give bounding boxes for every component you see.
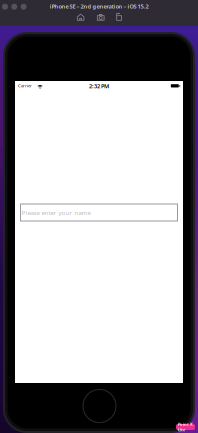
staticText: 2:32 PM xyxy=(89,82,109,90)
staticText: Point X Lite xyxy=(178,422,193,432)
button[interactable]: Screenshot xyxy=(97,13,104,21)
button[interactable]: Home xyxy=(77,13,84,21)
button[interactable]: Please enter your name xyxy=(20,203,178,221)
staticText: iPhone SE – 2nd generation – iOS 15.2 xyxy=(49,2,148,10)
button[interactable]: Rotate xyxy=(115,13,122,21)
staticText: Please enter your name xyxy=(21,208,90,217)
staticText: Carrier xyxy=(18,83,32,89)
